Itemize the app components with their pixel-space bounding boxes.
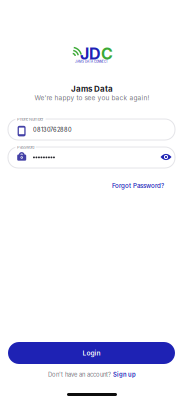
staticText: JAMS DATA CONNECT	[75, 60, 108, 63]
staticText: JD	[80, 44, 101, 63]
staticText: Forgot Password?	[112, 182, 164, 189]
staticText: Sign up	[113, 371, 136, 378]
staticText: Don't have an account?	[48, 371, 111, 378]
staticText: Login	[82, 349, 100, 357]
staticText: C	[101, 44, 113, 63]
staticText: We're happy to see you back again!	[34, 94, 149, 102]
button[interactable]: Forgot Password?	[112, 182, 164, 189]
button[interactable]: Sign up	[113, 371, 136, 378]
staticText: Phone Number	[17, 117, 44, 122]
button[interactable]: Login	[8, 342, 175, 364]
staticText: 08130762880	[33, 126, 72, 133]
button[interactable]: Show password	[156, 149, 176, 165]
staticText: Password	[17, 145, 34, 150]
staticText: Jams Data	[71, 84, 113, 94]
